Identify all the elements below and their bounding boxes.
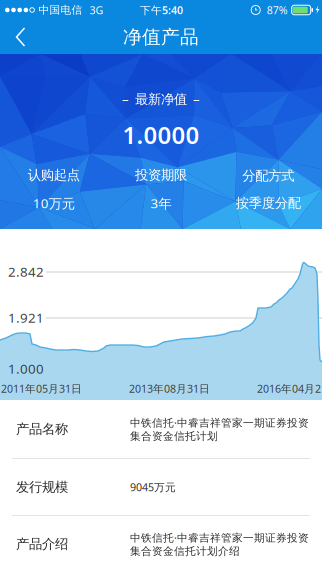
staticText: 2016年04月2 [257,381,321,396]
staticText: 按季度分配 [236,195,301,211]
staticText: 1.0000 [122,119,199,151]
staticText: 产品介绍 [16,536,68,552]
button[interactable]: Back [0,20,44,54]
staticText: 分配方式 [242,168,294,184]
staticText: 3年 [150,194,171,212]
staticText: 中铁信托·中睿吉祥管家一期证券投资 集合资金信托计划 [130,415,309,443]
staticText: 1.921 [8,309,44,326]
staticText: 净值产品 [123,25,199,48]
staticText: 发行规模 [16,479,68,495]
staticText: 中国电信 [38,3,82,16]
staticText: 下午5:40 [140,3,183,17]
staticText: – 最新净值 – [122,90,200,108]
staticText: 产品名称 [16,421,68,437]
staticText: 2011年05月31日 [1,381,82,396]
staticText: 认购起点 [28,167,80,183]
staticText: 2.842 [8,263,44,280]
staticText: 2013年08月31日 [129,381,210,396]
staticText: 中铁信托·中睿吉祥管家一期证券投资 集合资金信托计划介绍 [130,530,309,558]
staticText: 9045万元 [130,480,176,494]
staticText: 87% [267,3,288,17]
staticText: 3G [89,3,103,17]
staticText: 1.000 [8,360,44,377]
staticText: 投资期限 [135,167,187,183]
staticText: 10万元 [33,194,75,212]
